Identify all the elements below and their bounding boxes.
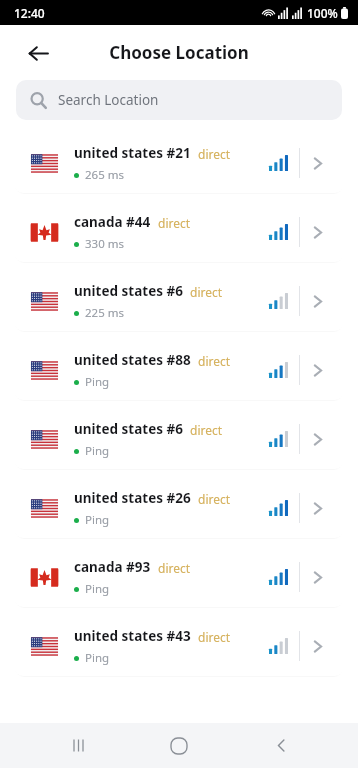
button[interactable]: united states #26: [14, 478, 344, 538]
button[interactable]: united states #43: [14, 616, 344, 676]
button[interactable]: Open united states #26: [300, 478, 334, 538]
staticText: direct: [158, 215, 191, 231]
button[interactable]: Open united states #21: [300, 133, 334, 193]
staticText: direct: [158, 560, 191, 576]
staticText: Choose Location: [109, 41, 249, 64]
staticText: direct: [198, 491, 231, 507]
button[interactable]: canada #93: [14, 547, 344, 607]
staticText: direct: [198, 146, 231, 162]
button[interactable]: united states #88: [14, 340, 344, 400]
staticText: 225 ms: [85, 305, 124, 321]
staticText: direct: [198, 353, 231, 369]
button[interactable]: Open canada #93: [300, 547, 334, 607]
staticText: Ping: [85, 443, 110, 459]
staticText: direct: [190, 284, 223, 300]
staticText: direct: [190, 422, 223, 438]
staticText: Ping: [85, 650, 110, 666]
button[interactable]: Recents: [54, 723, 102, 768]
staticText: 100%: [307, 5, 338, 21]
staticText: direct: [198, 629, 231, 645]
staticText: 265 ms: [85, 167, 124, 183]
staticText: united states #6: [74, 420, 183, 438]
staticText: Ping: [85, 374, 110, 390]
button[interactable]: Open united states #88: [300, 340, 334, 400]
staticText: canada #44: [74, 213, 151, 231]
staticText: 330 ms: [85, 236, 124, 252]
button[interactable]: Home: [155, 723, 203, 768]
staticText: united states #88: [74, 351, 191, 369]
button[interactable]: united states #21: [14, 133, 344, 193]
button[interactable]: Back: [257, 723, 305, 768]
staticText: Search Location: [58, 91, 159, 109]
staticText: united states #21: [74, 144, 191, 162]
button[interactable]: canada #44: [14, 202, 344, 262]
staticText: canada #93: [74, 558, 151, 576]
button[interactable]: united states #6: [14, 271, 344, 331]
staticText: 12:40: [14, 5, 45, 21]
button[interactable]: Open united states #6: [300, 271, 334, 331]
staticText: Ping: [85, 581, 110, 597]
button[interactable]: united states #6: [14, 409, 344, 469]
staticText: united states #43: [74, 627, 191, 645]
staticText: united states #26: [74, 489, 191, 507]
staticText: Ping: [85, 512, 110, 528]
button[interactable]: Open united states #43: [300, 616, 334, 676]
button[interactable]: Open united states #6: [300, 409, 334, 469]
button[interactable]: Open canada #44: [300, 202, 334, 262]
button[interactable]: Search Location: [16, 80, 342, 120]
staticText: united states #6: [74, 282, 183, 300]
button[interactable]: Back: [20, 35, 56, 71]
